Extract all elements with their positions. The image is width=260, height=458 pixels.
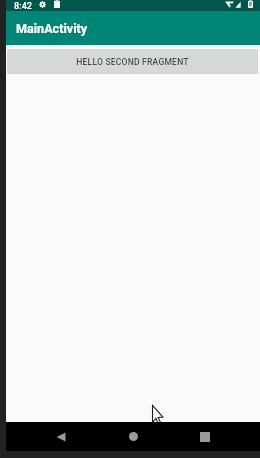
button[interactable]: Recent apps xyxy=(190,422,220,451)
button[interactable]: Back xyxy=(46,422,76,451)
staticText: HELLO SECOND FRAGMENT xyxy=(76,57,189,67)
button[interactable]: HELLO SECOND FRAGMENT xyxy=(7,49,258,74)
button[interactable]: Home xyxy=(118,422,148,451)
staticText: MainActivity xyxy=(16,21,88,36)
staticText: 8:42 xyxy=(14,0,33,11)
